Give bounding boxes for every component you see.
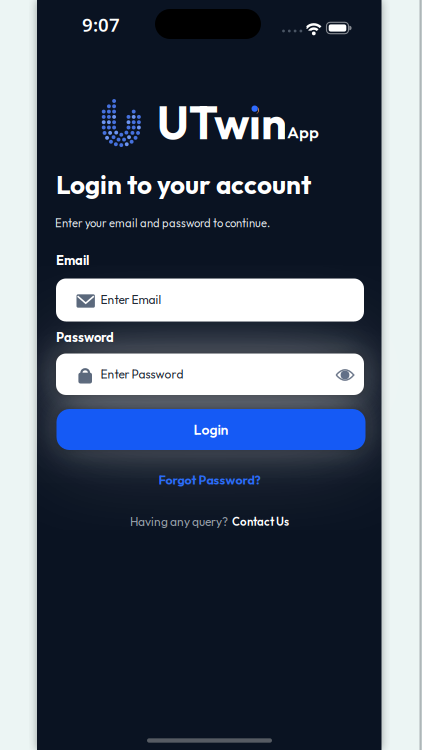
staticText: Forgot Password?	[158, 472, 260, 488]
staticText: App	[287, 121, 319, 143]
button[interactable]: Contact Us	[232, 514, 289, 529]
button[interactable]: Login	[56, 409, 365, 450]
button[interactable]: Forgot Password?	[158, 472, 260, 488]
button[interactable]: Enter Email	[56, 278, 364, 321]
staticText: Contact Us	[232, 514, 289, 529]
staticText: Enter your email and password to continu…	[55, 216, 270, 230]
staticText: Enter Email	[100, 292, 161, 307]
staticText: UTwin	[157, 94, 287, 151]
staticText: 9:07	[82, 12, 120, 37]
button[interactable]: Enter Password	[56, 353, 364, 395]
staticText: Having any query?	[130, 514, 228, 529]
staticText: Enter Password	[100, 366, 183, 382]
button[interactable]	[336, 369, 354, 381]
staticText: Password	[56, 329, 114, 345]
staticText: Email	[56, 252, 89, 268]
staticText: Login	[193, 421, 228, 438]
staticText: Login to your account	[56, 168, 311, 201]
